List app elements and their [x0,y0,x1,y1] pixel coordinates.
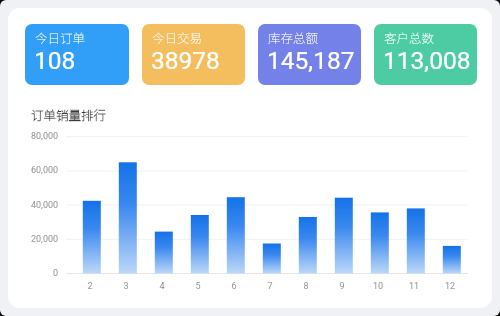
staticText: 今日订单 [35,28,86,46]
staticText: 库存总额 [268,28,319,46]
button[interactable]: 客户总数 [374,24,477,85]
staticText: 145,187 [267,46,355,75]
staticText: 38978 [151,46,220,75]
button[interactable]: 今日交易 [142,24,245,85]
staticText: 113,008 [383,46,471,75]
button[interactable]: 库存总额 [258,24,361,85]
button[interactable]: 今日订单 [25,24,129,85]
staticText: 订单销量排行 [31,105,107,123]
staticText: 客户总数 [384,28,435,46]
staticText: 今日交易 [152,28,203,46]
staticText: 108 [34,46,76,75]
